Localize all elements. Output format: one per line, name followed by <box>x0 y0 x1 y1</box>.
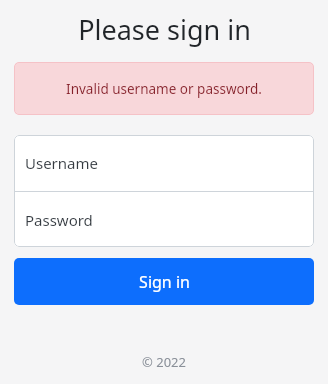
button[interactable]: Sign in <box>14 258 314 305</box>
staticText: Password <box>25 210 93 230</box>
staticText: Invalid username or password. <box>66 80 262 98</box>
button[interactable]: Password <box>14 192 314 247</box>
staticText: Sign in <box>139 271 190 293</box>
staticText: Username <box>25 153 98 173</box>
button[interactable]: Username <box>14 135 314 191</box>
staticText: © 2022 <box>142 353 186 371</box>
staticText: Please sign in <box>78 11 251 48</box>
